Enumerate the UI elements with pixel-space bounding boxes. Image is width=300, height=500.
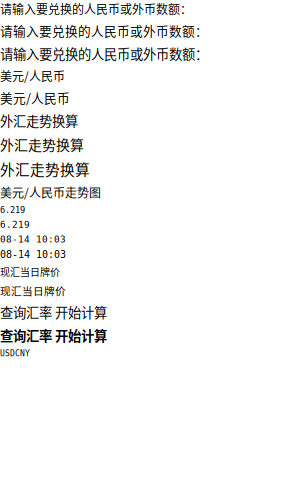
staticText: 查询汇率 开始计算 bbox=[0, 302, 107, 322]
staticText: USDCNY bbox=[0, 349, 30, 358]
staticText: 6.219 bbox=[0, 219, 30, 230]
staticText: 请输入要兑换的人民币或外币数额： bbox=[0, 21, 208, 40]
staticText: 外汇走势换算 bbox=[0, 111, 78, 130]
staticText: 外汇走势换算 bbox=[0, 158, 90, 179]
staticText: 现汇当日牌价 bbox=[0, 283, 66, 298]
staticText: 请输入要兑换的人民币或外币数额： bbox=[0, 0, 192, 17]
staticText: 美元/人民币 bbox=[0, 88, 70, 107]
staticText: 现汇当日牌价 bbox=[0, 264, 60, 279]
staticText: 查询汇率 开始计算 bbox=[0, 326, 107, 345]
staticText: 6.219 bbox=[0, 205, 25, 215]
staticText: 08-14 10:03 bbox=[0, 234, 66, 245]
staticText: 请输入要兑换的人民币或外币数额： bbox=[0, 44, 208, 63]
staticText: 美元/人民币走势图 bbox=[0, 184, 101, 201]
staticText: 美元/人民币 bbox=[0, 67, 65, 84]
staticText: 08-14 10:03 bbox=[0, 249, 66, 260]
staticText: 外汇走势换算 bbox=[0, 134, 84, 154]
